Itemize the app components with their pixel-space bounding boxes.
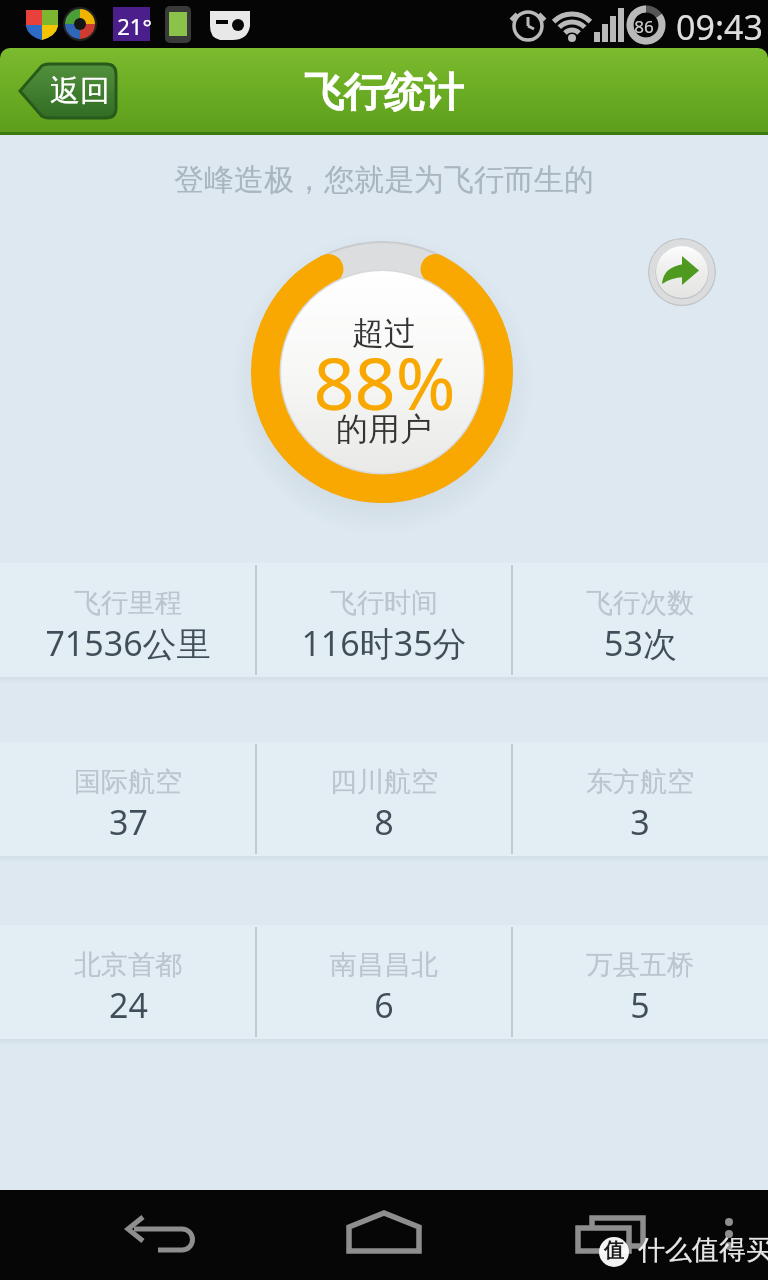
- button[interactable]: 飞行里程: [0, 563, 256, 677]
- staticText: 国际航空: [74, 765, 182, 799]
- staticText: 返回: [50, 72, 110, 110]
- staticText: 飞行统计: [304, 67, 464, 117]
- button[interactable]: [648, 238, 716, 306]
- staticText: 飞行时间: [330, 586, 438, 620]
- button[interactable]: 东方航空: [512, 742, 768, 856]
- button[interactable]: 北京首都: [0, 925, 256, 1039]
- staticText: 6: [374, 982, 394, 1028]
- staticText: 53次: [604, 620, 677, 666]
- staticText: 21°: [117, 11, 152, 41]
- staticText: 5: [630, 982, 650, 1028]
- button[interactable]: 飞行时间: [256, 563, 512, 677]
- staticText: 超过: [352, 313, 416, 353]
- staticText: 飞行次数: [586, 586, 694, 620]
- staticText: 四川航空: [330, 765, 438, 799]
- button[interactable]: [192, 1190, 384, 1280]
- button[interactable]: [0, 1190, 192, 1280]
- staticText: 88%: [313, 333, 456, 431]
- staticText: 24: [109, 982, 148, 1028]
- staticText: 登峰造极，您就是为飞行而生的: [174, 161, 594, 199]
- button[interactable]: 国际航空: [0, 742, 256, 856]
- button[interactable]: 万县五桥: [512, 925, 768, 1039]
- button[interactable]: 返回: [18, 62, 118, 120]
- button[interactable]: 飞行次数: [512, 563, 768, 677]
- staticText: 北京首都: [74, 948, 182, 982]
- staticText: 71536公里: [45, 620, 211, 666]
- button[interactable]: [384, 1190, 576, 1280]
- staticText: 值: [604, 1238, 624, 1263]
- staticText: 什么值得买: [638, 1233, 768, 1267]
- staticText: 飞行里程: [74, 586, 182, 620]
- button[interactable]: 南昌昌北: [256, 925, 512, 1039]
- staticText: 东方航空: [586, 765, 694, 799]
- staticText: 86: [634, 15, 654, 38]
- staticText: 37: [109, 799, 148, 845]
- staticText: 万县五桥: [586, 948, 694, 982]
- staticText: 南昌昌北: [330, 948, 438, 982]
- button[interactable]: [576, 1190, 768, 1280]
- staticText: 116时35分: [301, 620, 467, 666]
- button[interactable]: 四川航空: [256, 742, 512, 856]
- staticText: 的用户: [336, 409, 432, 449]
- staticText: 3: [630, 799, 650, 845]
- staticText: 09:43: [676, 4, 763, 50]
- staticText: 8: [374, 799, 394, 845]
